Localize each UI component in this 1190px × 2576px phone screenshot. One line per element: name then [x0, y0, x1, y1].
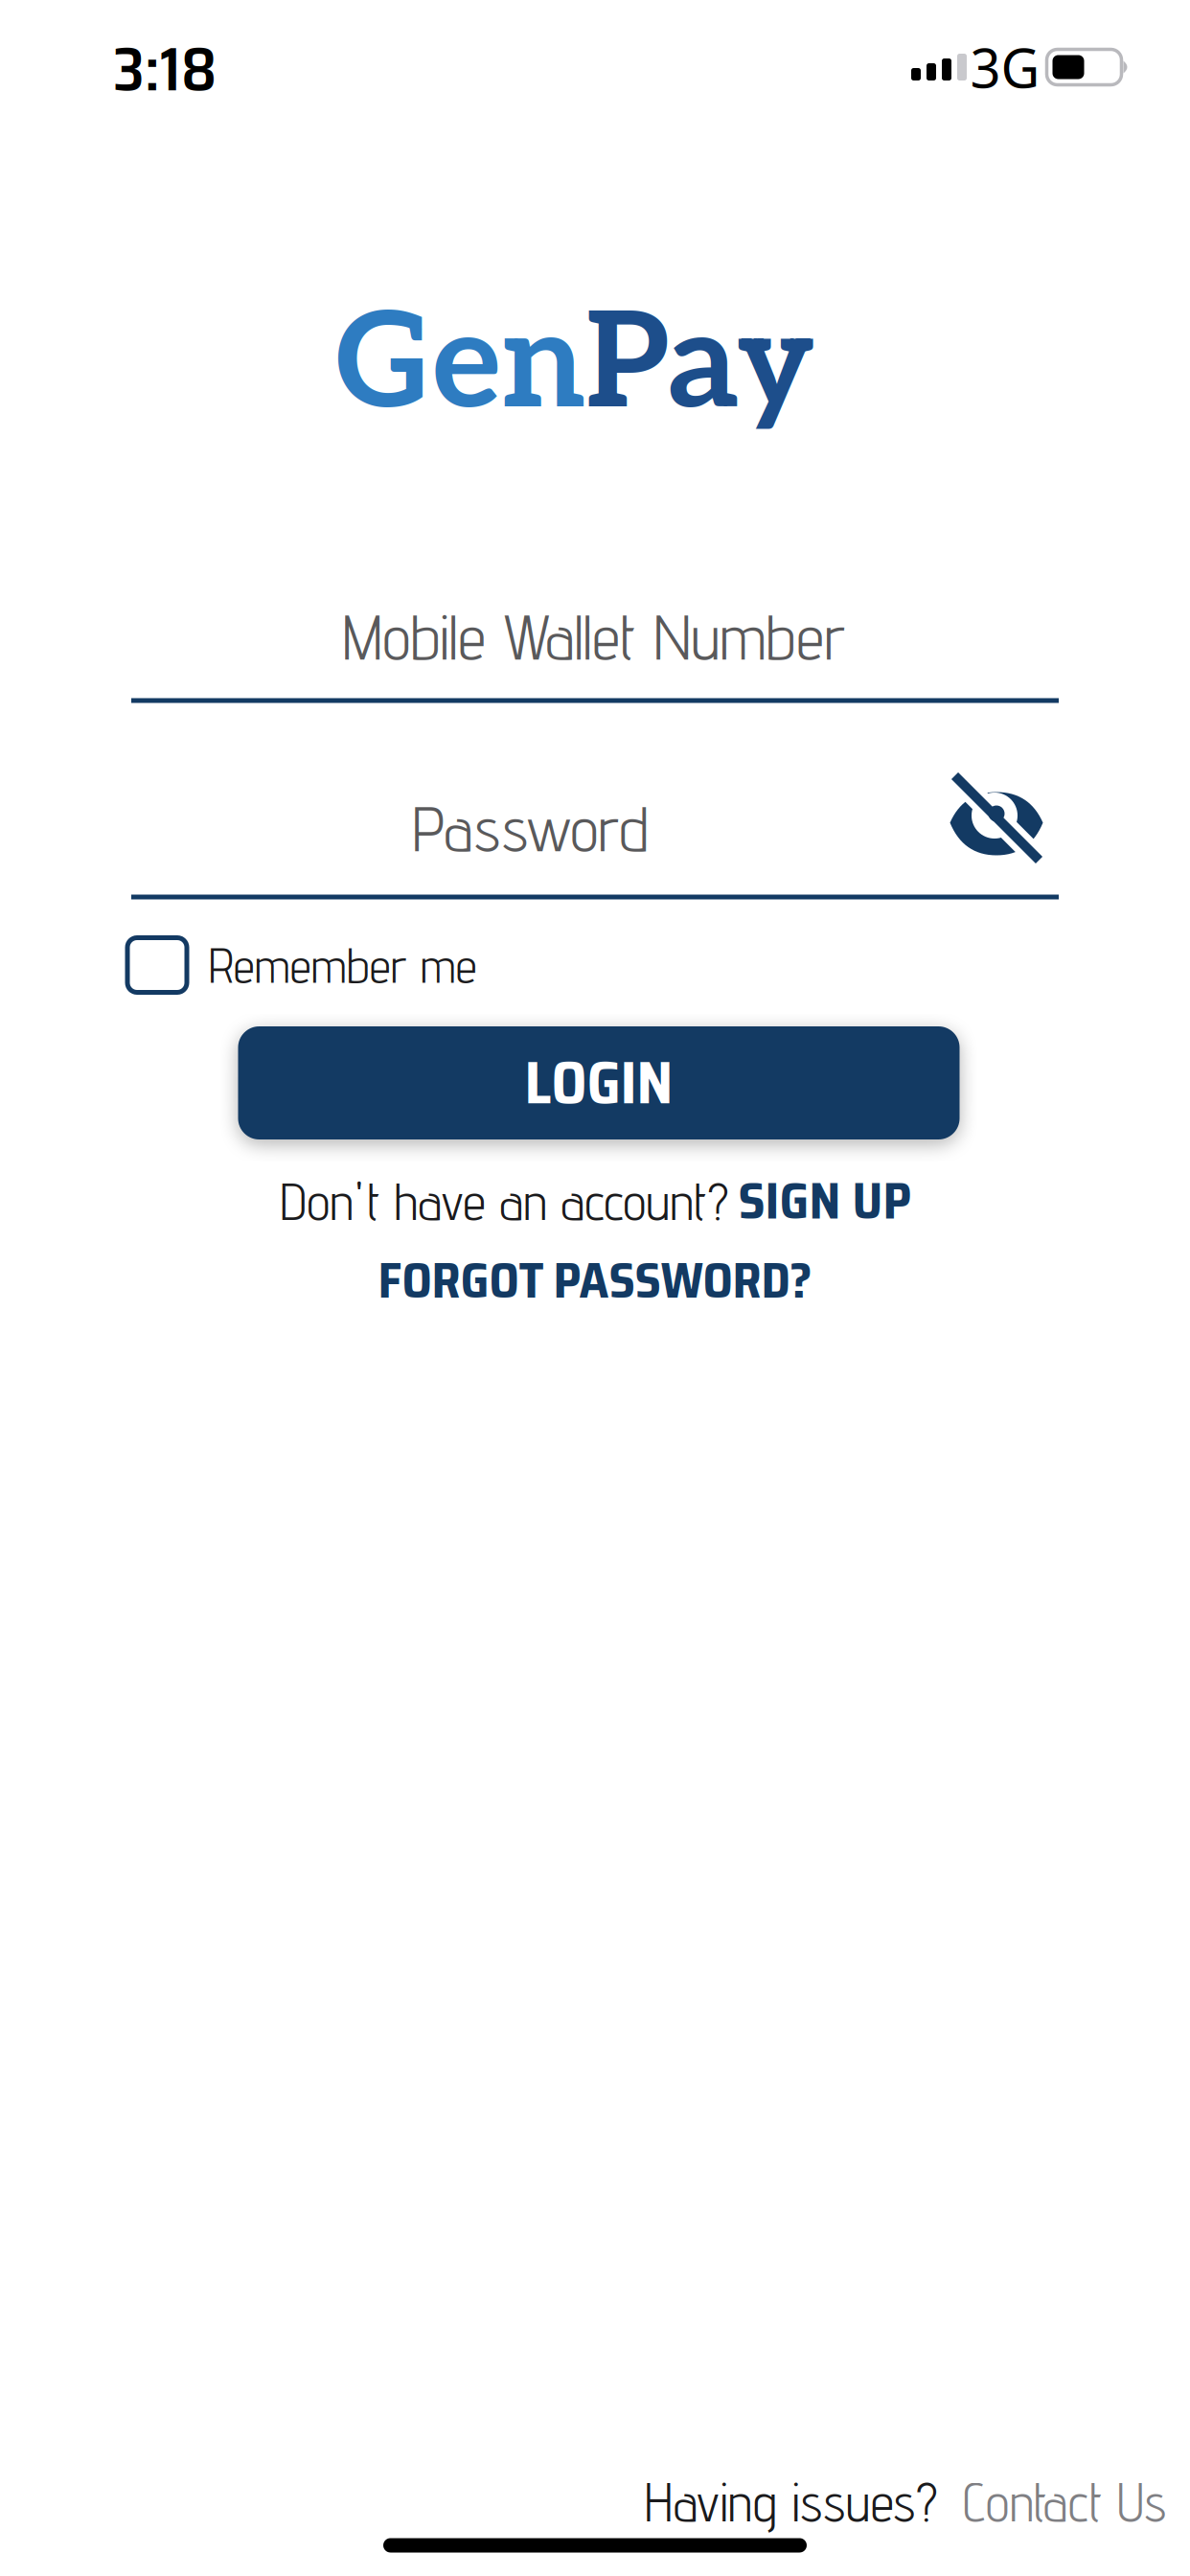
- button[interactable]: Remember me: [127, 936, 476, 994]
- staticText: Pay: [585, 287, 814, 445]
- button[interactable]: LOGIN: [238, 1026, 960, 1139]
- staticText: FORGOT PASSWORD?: [378, 1241, 812, 1320]
- staticText: 3G: [970, 31, 1040, 103]
- button[interactable]: Mobile Wallet Number: [130, 592, 1060, 703]
- staticText: Don't have an account?: [280, 1170, 729, 1232]
- staticText: Contact Us: [963, 2470, 1166, 2534]
- staticText: Having issues?: [645, 2470, 938, 2534]
- staticText: Mobile Wallet Number: [343, 598, 846, 674]
- staticText: LOGIN: [525, 1037, 673, 1129]
- button[interactable]: Show password: [950, 773, 1043, 866]
- staticText: Gen: [335, 287, 585, 445]
- staticText: Remember me: [209, 936, 476, 994]
- button[interactable]: Contact Us: [963, 2470, 1166, 2534]
- button[interactable]: FORGOT PASSWORD?: [378, 1241, 812, 1320]
- staticText: 3:18: [113, 21, 217, 117]
- staticText: Password: [412, 790, 649, 866]
- staticText: SIGN UP: [738, 1161, 912, 1241]
- button[interactable]: Password: [130, 784, 1060, 899]
- button[interactable]: SIGN UP: [738, 1161, 912, 1241]
